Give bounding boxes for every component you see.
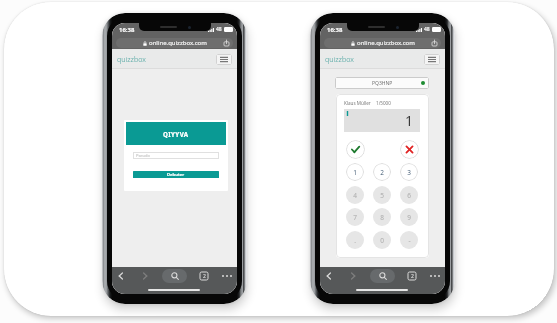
button[interactable]: Forward	[137, 268, 153, 284]
button[interactable]: Back	[113, 268, 129, 284]
button[interactable]: Correct	[346, 140, 365, 159]
staticText: .	[354, 236, 356, 245]
button[interactable]: .	[346, 231, 364, 249]
staticText: 16:38	[119, 26, 135, 34]
button[interactable]: Forward	[345, 268, 361, 284]
staticText: Debuter	[167, 172, 185, 178]
button[interactable]: More	[219, 268, 235, 284]
staticText: Pseudo	[136, 153, 150, 158]
button[interactable]: 3	[400, 163, 418, 181]
button[interactable]: Search	[370, 269, 395, 283]
button[interactable]: Address bar	[116, 38, 233, 48]
staticText: 1/5000	[376, 100, 391, 106]
button[interactable]: 9	[400, 208, 418, 226]
button[interactable]: 4	[346, 186, 364, 204]
button[interactable]: Tabs	[404, 268, 420, 284]
staticText: 5	[380, 191, 384, 200]
staticText: 48	[424, 26, 430, 33]
staticText: online.quizzbox.com	[357, 39, 415, 47]
button[interactable]: Menu	[216, 54, 232, 65]
button[interactable]: 6	[400, 186, 418, 204]
button[interactable]: Search	[162, 269, 187, 283]
staticText: 48	[216, 26, 222, 33]
button[interactable]: Debuter	[133, 171, 219, 178]
button[interactable]: 1	[346, 163, 364, 181]
button[interactable]: Address bar	[324, 38, 441, 48]
staticText: 2	[411, 273, 414, 280]
button[interactable]: 5	[373, 186, 391, 204]
staticText: 9	[407, 213, 411, 222]
button[interactable]: Tabs	[196, 268, 212, 284]
staticText: -	[408, 236, 411, 245]
button[interactable]: Menu	[424, 54, 440, 65]
staticText: 1	[353, 168, 357, 177]
staticText: 0	[380, 236, 384, 245]
button[interactable]: 8	[373, 208, 391, 226]
staticText: 16:38	[327, 26, 343, 34]
staticText: 8	[380, 213, 384, 222]
staticText: 6	[407, 191, 411, 200]
button[interactable]: More	[427, 268, 443, 284]
button[interactable]: 7	[346, 208, 364, 226]
button[interactable]: -	[400, 231, 418, 249]
staticText: 2	[380, 168, 384, 177]
staticText: quizzbox	[325, 54, 354, 64]
button[interactable]: 0	[373, 231, 391, 249]
button[interactable]: PQ3HNP	[335, 77, 429, 89]
button[interactable]: Pseudo	[133, 152, 219, 159]
staticText: quizzbox	[117, 54, 146, 64]
staticText: 4	[353, 191, 357, 200]
button[interactable]: 2	[373, 163, 391, 181]
staticText: PQ3HNP	[372, 80, 393, 87]
staticText: 1	[405, 111, 414, 130]
button[interactable]: Back	[321, 268, 337, 284]
staticText: online.quizzbox.com	[149, 39, 207, 47]
button[interactable]: Wrong	[400, 140, 419, 159]
staticText: QIYYVA	[163, 130, 189, 138]
staticText: 2	[203, 273, 206, 280]
staticText: 7	[353, 213, 357, 222]
staticText: Klaus Müller	[344, 100, 371, 106]
staticText: 3	[407, 168, 411, 177]
